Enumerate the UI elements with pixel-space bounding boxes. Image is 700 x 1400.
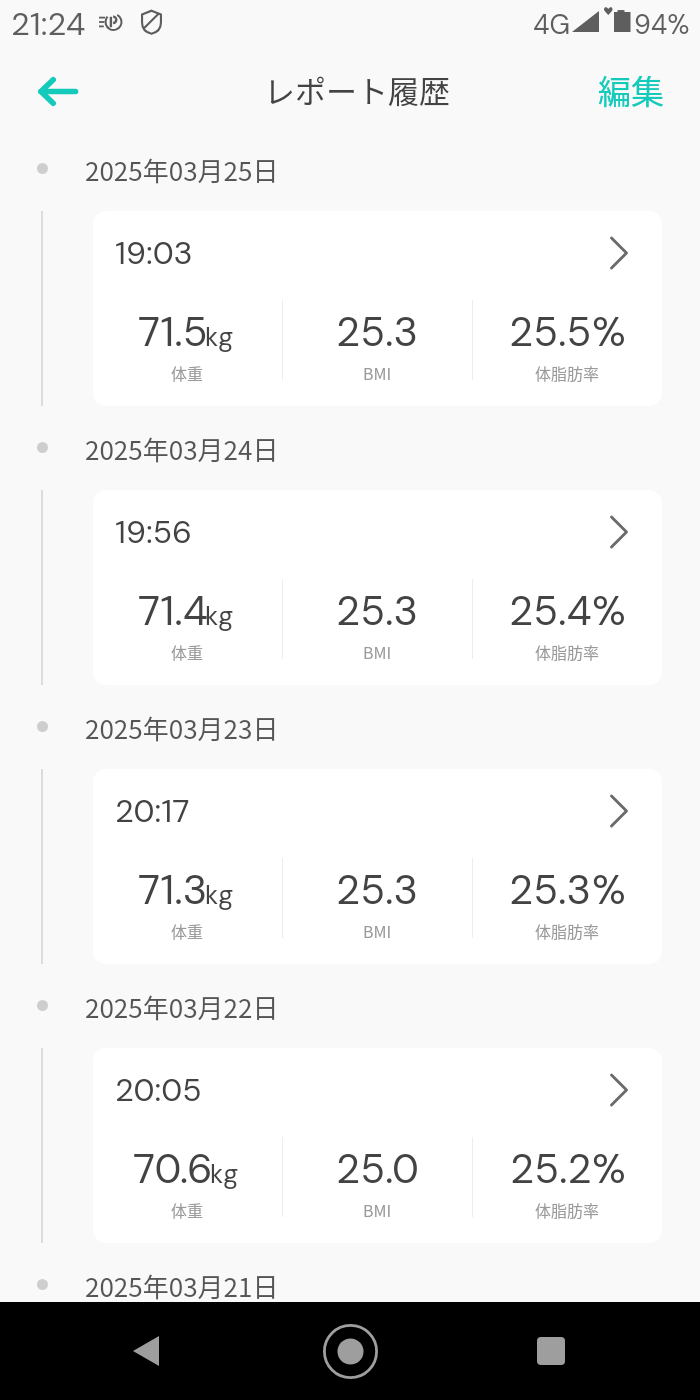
staticText: kg — [205, 878, 234, 912]
staticText: kg — [205, 320, 234, 354]
staticText: レポート履歴 — [264, 67, 450, 112]
staticText: 25.3 — [509, 863, 592, 916]
staticText: 70.6 — [133, 1142, 213, 1195]
staticText: 71.4 — [138, 584, 208, 637]
staticText: 94% — [634, 7, 690, 42]
staticText: % — [592, 1142, 626, 1195]
button[interactable]: Home — [300, 1302, 400, 1400]
staticText: BMI — [363, 1198, 392, 1221]
staticText: 2025年03月21日 — [85, 1267, 279, 1305]
staticText: 体重 — [171, 919, 204, 942]
staticText: kg — [210, 1157, 239, 1191]
staticText: % — [592, 584, 626, 637]
staticText: BMI — [363, 361, 392, 384]
button[interactable]: Back — [38, 60, 90, 116]
staticText: 2025年03月22日 — [85, 988, 279, 1026]
staticText: 25.3 — [336, 584, 419, 637]
button[interactable]: Recent apps — [501, 1302, 601, 1400]
staticText: 71.3 — [138, 863, 208, 916]
staticText: 71.5 — [138, 305, 208, 358]
staticText: 2025年03月24日 — [85, 430, 279, 468]
staticText: % — [592, 863, 626, 916]
staticText: 25.3 — [336, 305, 419, 358]
staticText: 体重 — [171, 361, 204, 384]
staticText: 体重 — [171, 640, 204, 663]
staticText: 4G — [533, 7, 571, 42]
staticText: 編集 — [598, 66, 664, 114]
button[interactable]: 19:56 — [93, 490, 662, 685]
staticText: 20:05 — [115, 1069, 202, 1111]
staticText: 25.4 — [509, 584, 592, 637]
staticText: BMI — [363, 919, 392, 942]
staticText: 25.3 — [336, 863, 419, 916]
staticText: 25.2 — [510, 1142, 592, 1195]
staticText: 体重 — [171, 1198, 204, 1221]
button[interactable]: 19:03 — [93, 211, 662, 406]
staticText: 2025年03月23日 — [85, 709, 279, 747]
button[interactable]: 編集 — [598, 66, 664, 114]
button[interactable]: Back — [96, 1302, 196, 1400]
staticText: 19:03 — [115, 232, 193, 274]
staticText: 体脂肪率 — [535, 919, 600, 942]
staticText: 2025年03月25日 — [85, 151, 279, 189]
staticText: 25.0 — [336, 1142, 419, 1195]
staticText: % — [592, 305, 626, 358]
button[interactable]: 20:17 — [93, 769, 662, 964]
staticText: 19:56 — [115, 511, 192, 553]
button[interactable]: 20:05 — [93, 1048, 662, 1243]
staticText: 体脂肪率 — [535, 640, 600, 663]
staticText: 25.5 — [509, 305, 592, 358]
staticText: kg — [205, 599, 234, 633]
staticText: 体脂肪率 — [535, 1198, 600, 1221]
staticText: BMI — [363, 640, 392, 663]
staticText: 21:24 — [11, 3, 86, 45]
staticText: 20:17 — [115, 790, 190, 832]
staticText: 体脂肪率 — [535, 361, 600, 384]
